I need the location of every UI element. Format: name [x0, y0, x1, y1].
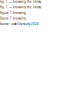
staticText: Figure 1 browsing	[0, 11, 26, 15]
staticText: Fig. 1 — browsing the library	[0, 5, 41, 9]
staticText: Fig. 1 — browsing the library	[0, 0, 41, 3]
staticText: Figure 1 browsing	[0, 17, 26, 20]
staticText: Source: usability study 2024	[0, 22, 39, 26]
